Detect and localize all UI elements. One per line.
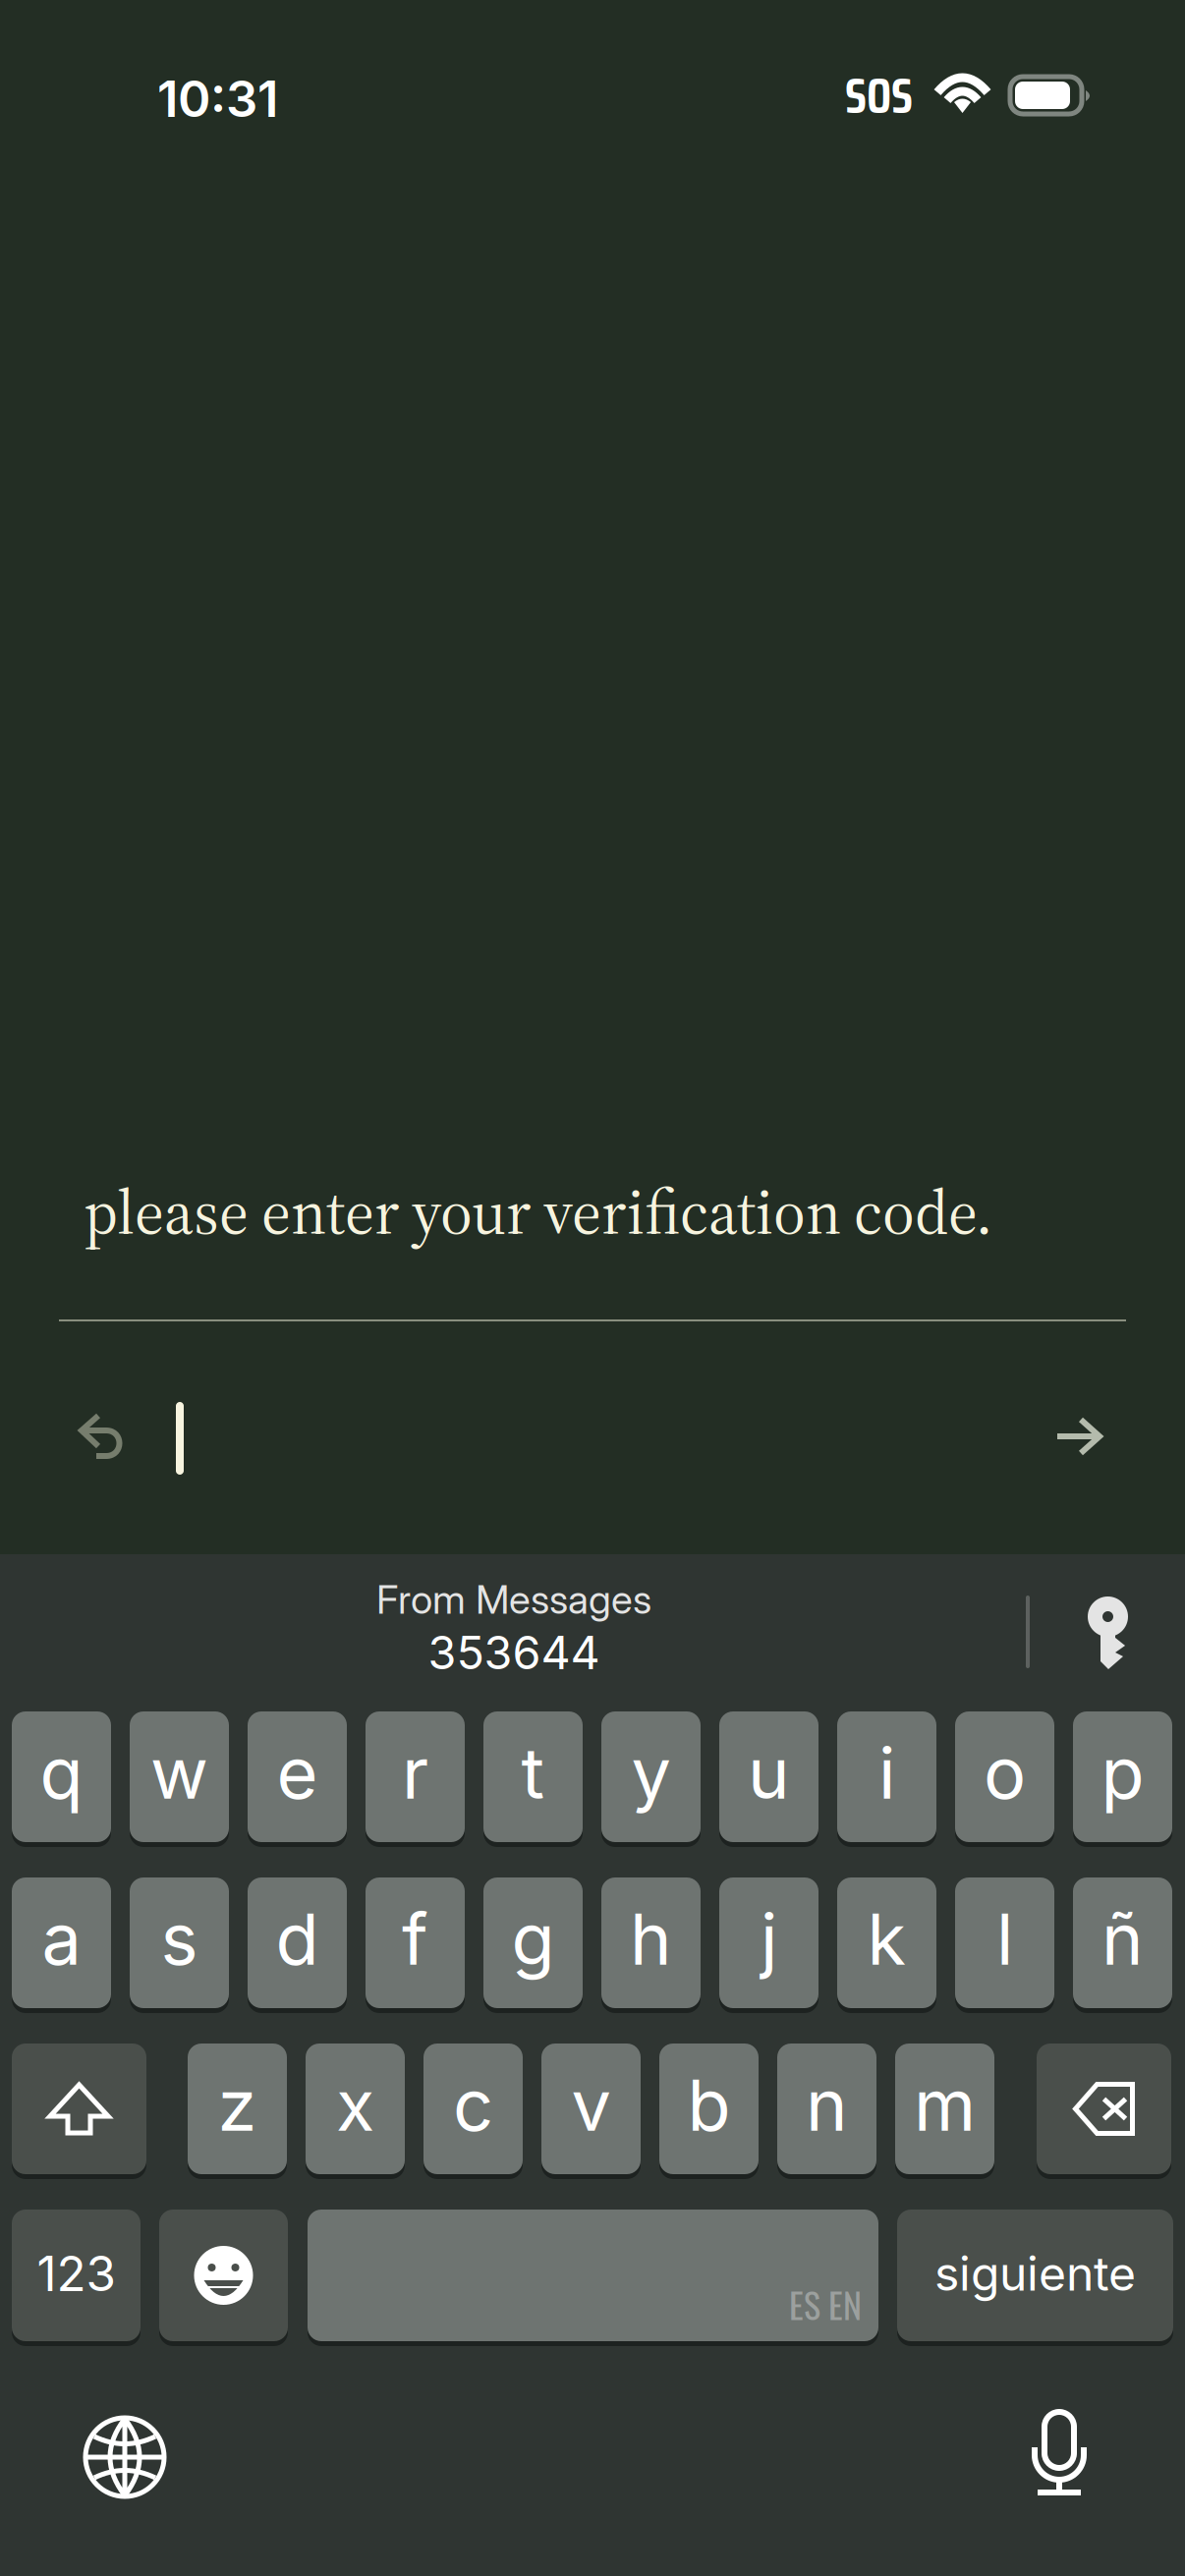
- button[interactable]: w: [130, 1711, 229, 1842]
- staticText: d: [276, 1896, 319, 1982]
- staticText: m: [914, 2062, 976, 2148]
- staticText: 353644: [428, 1625, 600, 1680]
- button[interactable]: n: [777, 2044, 876, 2174]
- staticText: c: [453, 2062, 493, 2148]
- button[interactable]: e: [248, 1711, 347, 1842]
- staticText: v: [571, 2062, 611, 2148]
- button[interactable]: p: [1073, 1711, 1172, 1842]
- staticText: b: [687, 2062, 731, 2148]
- staticText: y: [631, 1730, 671, 1816]
- button[interactable]: i: [837, 1711, 936, 1842]
- button[interactable]: r: [366, 1711, 465, 1842]
- staticText: a: [42, 1896, 81, 1982]
- staticText: q: [40, 1730, 83, 1816]
- button[interactable]: o: [955, 1711, 1054, 1842]
- button[interactable]: b: [659, 2044, 759, 2174]
- button[interactable]: y: [601, 1711, 701, 1842]
- staticText: e: [277, 1730, 318, 1816]
- button[interactable]: l: [955, 1877, 1054, 2008]
- button[interactable]: v: [541, 2044, 641, 2174]
- button[interactable]: k: [837, 1877, 936, 2008]
- button[interactable]: z: [188, 2044, 287, 2174]
- button[interactable]: Space: [308, 2210, 878, 2341]
- staticText: 123: [37, 2244, 115, 2303]
- staticText: l: [996, 1896, 1013, 1982]
- staticText: z: [218, 2062, 257, 2148]
- button[interactable]: Delete: [1037, 2044, 1171, 2174]
- staticText: o: [984, 1730, 1026, 1816]
- button[interactable]: s: [130, 1877, 229, 2008]
- staticText: ñ: [1101, 1896, 1144, 1982]
- staticText: x: [336, 2062, 374, 2148]
- button[interactable]: t: [483, 1711, 583, 1842]
- button[interactable]: x: [306, 2044, 405, 2174]
- staticText: r: [402, 1730, 428, 1816]
- button[interactable]: Dictation: [1008, 2388, 1110, 2519]
- staticText: please enter your verification code.: [84, 1169, 992, 1254]
- button[interactable]: 123: [12, 2210, 141, 2341]
- button[interactable]: u: [719, 1711, 818, 1842]
- button[interactable]: Passwords: [1062, 1575, 1154, 1691]
- staticText: n: [806, 2062, 848, 2148]
- staticText: siguiente: [934, 2245, 1136, 2302]
- staticText: j: [761, 1896, 777, 1982]
- button[interactable]: siguiente: [897, 2210, 1173, 2341]
- staticText: g: [511, 1896, 555, 1982]
- staticText: SOS: [845, 58, 913, 134]
- button[interactable]: j: [719, 1877, 818, 2008]
- button[interactable]: Emoji: [159, 2210, 288, 2341]
- button[interactable]: q: [12, 1711, 111, 1842]
- staticText: w: [150, 1730, 208, 1816]
- button[interactable]: h: [601, 1877, 701, 2008]
- staticText: From Messages: [376, 1576, 651, 1623]
- staticText: h: [630, 1896, 672, 1982]
- button[interactable]: a: [12, 1877, 111, 2008]
- button[interactable]: c: [423, 2044, 523, 2174]
- staticText: u: [748, 1730, 790, 1816]
- staticText: s: [161, 1896, 198, 1982]
- button[interactable]: Next keyboard: [62, 2394, 188, 2520]
- staticText: k: [867, 1896, 906, 1982]
- staticText: ES EN: [789, 2278, 862, 2330]
- button[interactable]: Shift: [12, 2044, 146, 2174]
- button[interactable]: Continue: [1026, 1386, 1131, 1486]
- button[interactable]: d: [248, 1877, 347, 2008]
- staticText: i: [878, 1730, 895, 1816]
- button[interactable]: ñ: [1073, 1877, 1172, 2008]
- button[interactable]: Undo: [49, 1381, 157, 1490]
- staticText: f: [402, 1896, 428, 1982]
- staticText: t: [521, 1730, 545, 1816]
- staticText: p: [1101, 1730, 1144, 1816]
- staticText: 10:31: [157, 69, 278, 129]
- button[interactable]: m: [895, 2044, 994, 2174]
- button[interactable]: f: [366, 1877, 465, 2008]
- button[interactable]: g: [483, 1877, 583, 2008]
